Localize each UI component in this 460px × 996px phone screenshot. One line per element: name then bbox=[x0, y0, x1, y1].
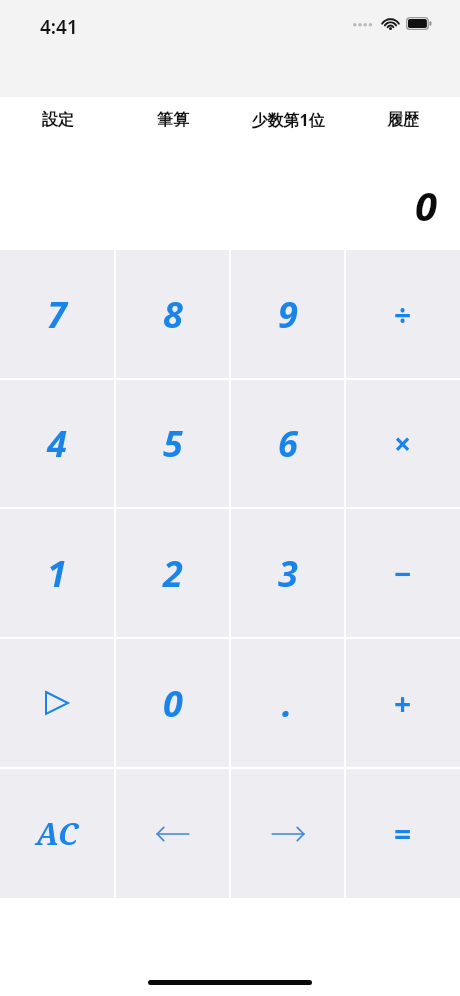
button[interactable]: . bbox=[231, 639, 344, 767]
staticText: 筆算 bbox=[157, 110, 189, 130]
button[interactable]: 7 bbox=[0, 250, 114, 378]
button[interactable]: AC bbox=[0, 769, 114, 898]
button[interactable]: 2 bbox=[116, 509, 229, 637]
button[interactable]: = bbox=[346, 769, 460, 898]
staticText: 3 bbox=[278, 549, 298, 598]
staticText: − bbox=[394, 553, 412, 594]
button[interactable]: 履歴 bbox=[345, 97, 460, 143]
staticText: AC bbox=[36, 813, 79, 854]
button[interactable]: Play bbox=[0, 639, 114, 767]
button[interactable]: 4 bbox=[0, 380, 114, 507]
button[interactable]: Backspace bbox=[116, 769, 229, 898]
button[interactable]: 筆算 bbox=[115, 97, 230, 143]
staticText: 履歴 bbox=[387, 110, 419, 130]
button[interactable]: × bbox=[346, 380, 460, 507]
staticText: + bbox=[394, 683, 412, 724]
staticText: 4 bbox=[47, 419, 67, 468]
staticText: 7 bbox=[47, 290, 67, 339]
button[interactable]: 6 bbox=[231, 380, 344, 507]
button[interactable]: 5 bbox=[116, 380, 229, 507]
button[interactable]: 1 bbox=[0, 509, 114, 637]
staticText: 2 bbox=[163, 549, 183, 598]
staticText: 9 bbox=[278, 290, 298, 339]
staticText: 0 bbox=[163, 679, 183, 728]
button[interactable]: 3 bbox=[231, 509, 344, 637]
button[interactable]: 設定 bbox=[0, 97, 115, 143]
staticText: = bbox=[394, 813, 412, 854]
button[interactable]: + bbox=[346, 639, 460, 767]
staticText: . bbox=[282, 679, 293, 728]
staticText: 8 bbox=[163, 290, 183, 339]
button[interactable]: 0 bbox=[116, 639, 229, 767]
button[interactable]: ÷ bbox=[346, 250, 460, 378]
staticText: 設定 bbox=[42, 110, 74, 130]
button[interactable]: 少数第1位 bbox=[230, 97, 345, 143]
staticText: 6 bbox=[278, 419, 298, 468]
staticText: ÷ bbox=[394, 294, 412, 335]
button[interactable]: 8 bbox=[116, 250, 229, 378]
staticText: 少数第1位 bbox=[251, 109, 325, 131]
staticText: 4:41 bbox=[40, 14, 78, 40]
staticText: 5 bbox=[163, 419, 183, 468]
button[interactable]: − bbox=[346, 509, 460, 637]
button[interactable]: 9 bbox=[231, 250, 344, 378]
staticText: × bbox=[394, 423, 412, 464]
button[interactable]: Forward bbox=[231, 769, 344, 898]
staticText: 0 bbox=[415, 178, 438, 232]
staticText: 1 bbox=[47, 549, 67, 598]
